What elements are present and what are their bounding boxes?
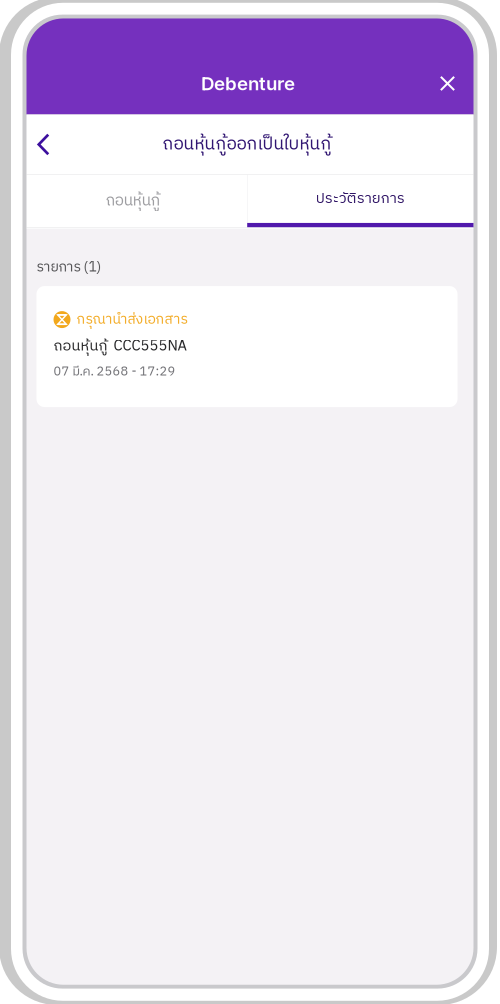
staticText: 07 มี.ค. 2568 - 17:29 bbox=[53, 361, 175, 382]
staticText: กรุณานำส่งเอกสาร bbox=[76, 308, 187, 331]
button[interactable]: ถอนหุ้นกู้ bbox=[26, 174, 247, 227]
button[interactable]: Close bbox=[425, 61, 469, 105]
button[interactable]: Back bbox=[26, 122, 60, 166]
button[interactable]: ประวัติรายการ bbox=[247, 174, 473, 227]
button[interactable]: กรุณานำส่งเอกสาร bbox=[36, 286, 457, 407]
staticText: ประวัติรายการ bbox=[316, 187, 405, 211]
staticText: ถอนหุ้นกู้ออกเป็นใบหุ้นกู้ bbox=[162, 130, 331, 159]
staticText: ถอนหุ้นกู้ CCC555NA bbox=[53, 334, 186, 358]
staticText: รายการ (1) bbox=[36, 256, 101, 279]
staticText: Debenture bbox=[201, 72, 295, 95]
staticText: ถอนหุ้นกู้ bbox=[106, 188, 160, 214]
